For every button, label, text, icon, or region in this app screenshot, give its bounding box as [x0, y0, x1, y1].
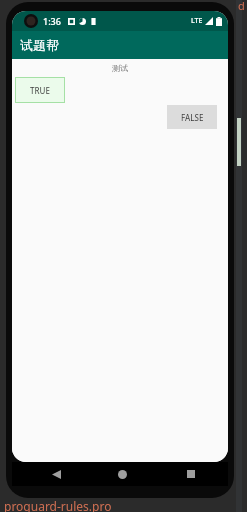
button[interactable]: Home — [111, 463, 133, 485]
staticText: 测试 — [12, 63, 228, 73]
staticText: LTE — [191, 16, 203, 26]
staticText: d — [238, 0, 245, 13]
button[interactable]: Recent apps — [180, 463, 202, 485]
button[interactable]: FALSE — [167, 105, 217, 129]
button[interactable]: Back — [45, 463, 67, 485]
staticText: FALSE — [181, 112, 204, 123]
staticText: proguard-rules.pro — [4, 498, 112, 512]
button[interactable]: 试题帮 — [12, 31, 228, 59]
staticText: TRUE — [30, 85, 50, 96]
staticText: 试题帮 — [20, 37, 59, 53]
staticText: 1:36 — [43, 15, 61, 27]
button[interactable]: TRUE — [15, 77, 65, 103]
